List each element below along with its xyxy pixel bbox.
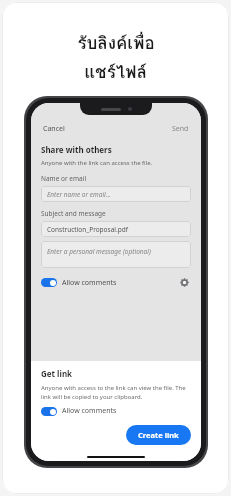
staticText: Allow comments: [62, 406, 117, 416]
button[interactable]: Construction_Proposal.pdf: [41, 221, 191, 237]
staticText: Anyone with the link can access the file…: [41, 159, 153, 167]
staticText: Cancel: [43, 124, 65, 134]
button[interactable]: Cancel: [41, 122, 67, 136]
button[interactable]: Enter a personal message (optional): [41, 241, 191, 268]
button[interactable]: Send: [170, 122, 191, 136]
staticText: Share with others: [41, 144, 112, 155]
staticText: Subject and message: [41, 209, 106, 218]
button[interactable]: Allow comments: [41, 276, 191, 289]
staticText: Enter name or email...: [47, 190, 111, 199]
button[interactable]: Comment settings: [178, 276, 191, 289]
staticText: Construction_Proposal.pdf: [47, 225, 128, 234]
staticText: Enter a personal message (optional): [47, 247, 151, 256]
staticText: Allow comments: [62, 278, 117, 288]
staticText: รับลิงค์เพื่อ: [77, 29, 155, 56]
staticText: Create link: [138, 430, 179, 440]
staticText: Send: [172, 124, 189, 134]
staticText: แชร์ไฟล์: [84, 58, 147, 85]
staticText: Anyone with access to the link can view …: [41, 384, 191, 400]
button[interactable]: Create link: [126, 425, 191, 445]
button[interactable]: Enter name or email...: [41, 186, 191, 202]
staticText: Get link: [41, 368, 73, 379]
staticText: Name or email: [41, 174, 87, 183]
button[interactable]: Allow comments: [41, 406, 117, 416]
